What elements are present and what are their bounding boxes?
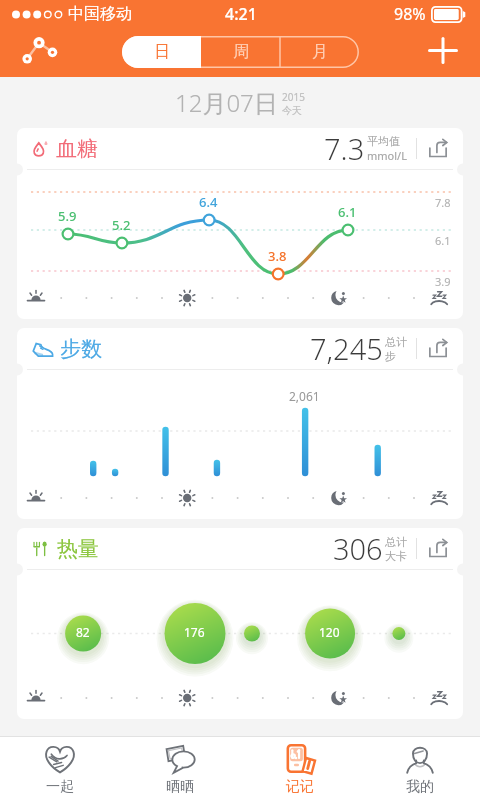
button[interactable]: Share — [421, 532, 455, 566]
staticText: 日 — [154, 42, 170, 62]
staticText: 我的 — [406, 778, 434, 796]
staticText: 周 — [233, 42, 249, 62]
staticText: 5.2 — [112, 216, 131, 234]
staticText: 6.1 — [435, 233, 451, 248]
staticText: 月 — [312, 42, 328, 62]
staticText: 2015 — [282, 90, 305, 104]
button[interactable]: 日 — [122, 36, 201, 68]
staticText: 步数 — [60, 336, 102, 362]
staticText: 7,245 — [310, 329, 383, 368]
button[interactable]: 我的 — [360, 737, 480, 800]
staticText: 血糖 — [56, 136, 98, 162]
staticText: 98% — [394, 3, 426, 25]
staticText: 12月07日 — [175, 86, 278, 119]
staticText: 176 — [184, 624, 205, 640]
staticText: 2,061 — [289, 388, 320, 404]
staticText: mmol/L — [367, 148, 407, 163]
staticText: 一起 — [46, 778, 74, 796]
staticText: 120 — [319, 624, 340, 640]
button[interactable]: Share — [421, 132, 455, 166]
staticText: 平均值 — [367, 134, 400, 148]
staticText: 晒晒 — [166, 778, 194, 796]
staticText: 热量 — [57, 536, 99, 562]
staticText: 总计 — [385, 335, 407, 349]
staticText: 7.8 — [435, 195, 451, 210]
button[interactable]: 一起 — [0, 737, 120, 800]
staticText: 记记 — [286, 778, 314, 796]
staticText: 总计 — [385, 535, 407, 549]
staticText: 5.9 — [58, 207, 77, 225]
staticText: 6.4 — [199, 193, 218, 211]
button[interactable]: 月 — [280, 36, 359, 68]
staticText: 4:21 — [225, 3, 257, 25]
staticText: 306 — [333, 529, 383, 568]
staticText: 中国移动 — [68, 4, 132, 24]
staticText: 3.8 — [268, 247, 287, 265]
staticText: 今天 — [282, 104, 302, 117]
staticText: 6.1 — [338, 203, 357, 221]
staticText: 7.3 — [324, 129, 365, 168]
staticText: 3.9 — [435, 274, 451, 289]
staticText: 82 — [76, 624, 90, 640]
button[interactable]: 记记 — [240, 737, 360, 800]
button[interactable]: Trends — [18, 28, 62, 72]
staticText: 步 — [385, 349, 396, 363]
button[interactable]: Add — [421, 28, 465, 72]
button[interactable]: Share — [421, 332, 455, 366]
staticText: 大卡 — [385, 549, 407, 563]
button[interactable]: 周 — [201, 36, 280, 68]
button[interactable]: 晒晒 — [120, 737, 240, 800]
